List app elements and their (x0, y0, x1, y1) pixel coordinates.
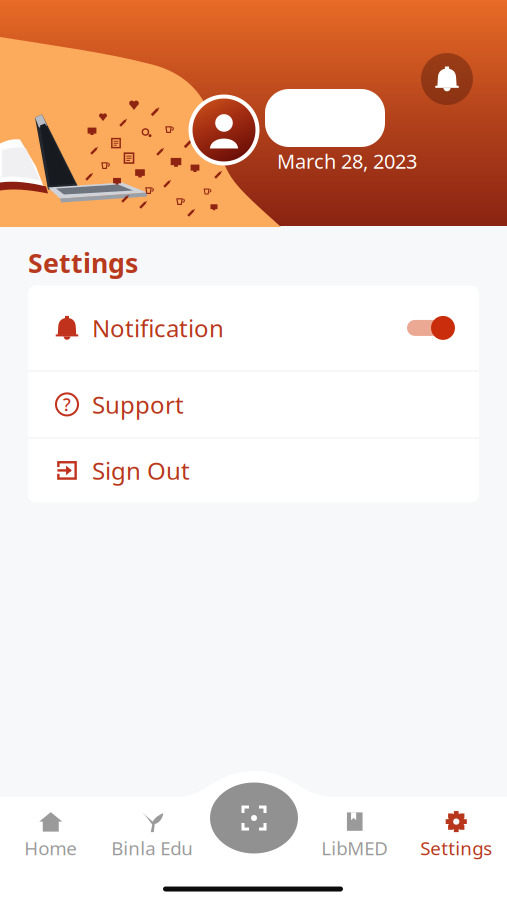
button[interactable]: ? (28, 371, 479, 437)
staticText: ? (63, 393, 71, 416)
staticText: March 28, 2023 (277, 148, 417, 174)
staticText: Home (24, 836, 77, 860)
button[interactable]: Settings (405, 803, 507, 882)
button[interactable]: Sign Out (28, 438, 479, 502)
button[interactable]: Notifications (421, 53, 473, 105)
staticText: Notification (92, 312, 224, 344)
staticText: Sign Out (92, 454, 190, 486)
staticText: Binla Edu (111, 836, 193, 860)
staticText: LibMED (321, 836, 388, 860)
staticText: Support (92, 388, 184, 420)
button[interactable]: Home (0, 803, 101, 882)
staticText: Settings (28, 245, 138, 280)
staticText: Settings (420, 836, 492, 860)
button[interactable]: LibMED (304, 803, 405, 882)
button[interactable]: Binla Edu (101, 803, 203, 882)
button[interactable]: Notification (28, 285, 479, 370)
button[interactable]: Scan (210, 782, 298, 853)
